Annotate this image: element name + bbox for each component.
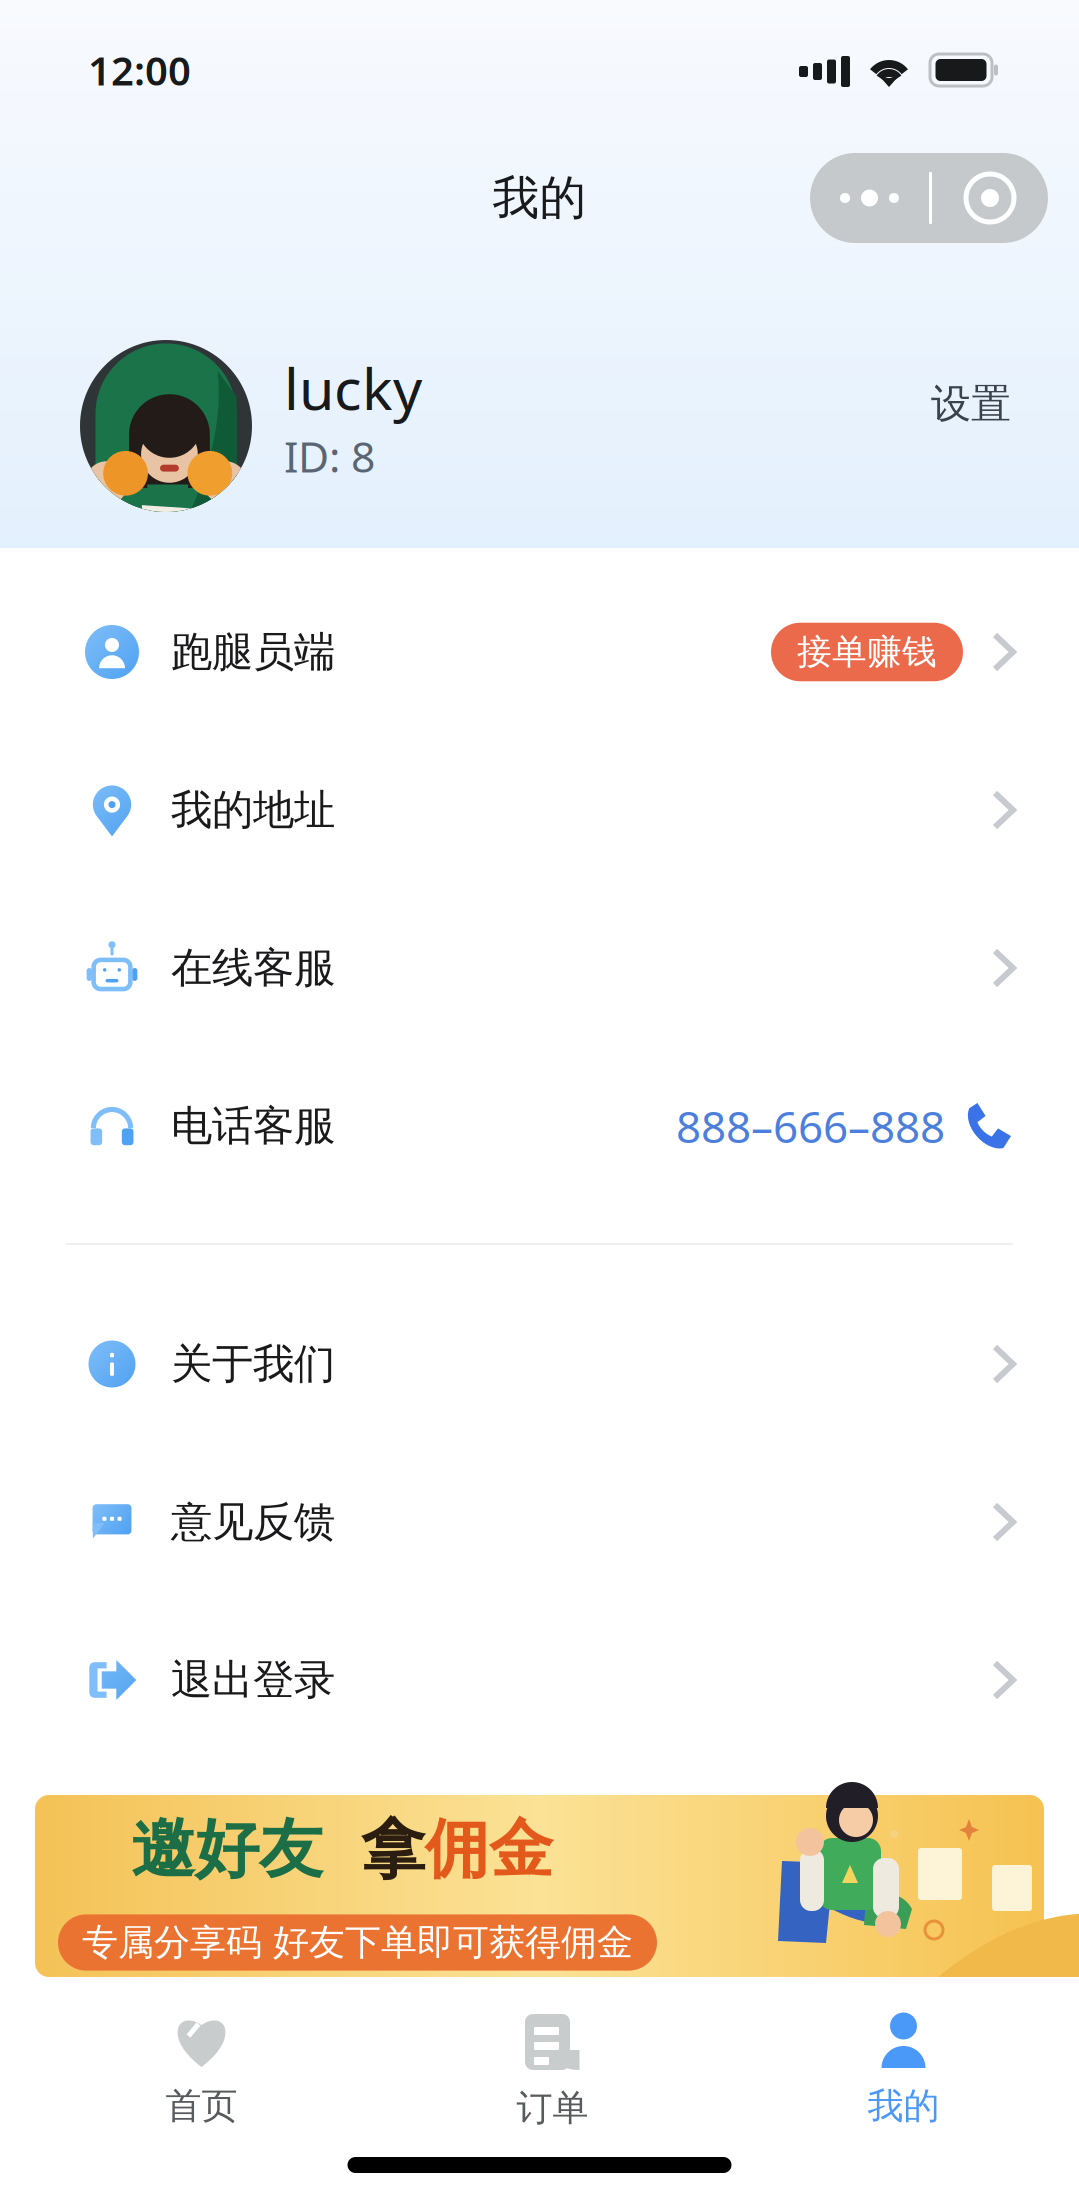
button[interactable]: 关于我们: [0, 1285, 1079, 1443]
button[interactable]: 我的: [728, 1977, 1079, 2133]
staticText: 订单: [516, 2086, 588, 2130]
button[interactable]: More: [810, 153, 929, 243]
button[interactable]: Close mini program: [932, 153, 1048, 243]
button[interactable]: 退出登录: [0, 1601, 1079, 1759]
staticText: 拿: [323, 1810, 425, 1889]
staticText: 关于我们: [171, 1339, 335, 1389]
staticText: 专属分享码 好友下单即可获得佣金: [82, 1920, 633, 1965]
staticText: 意见反馈: [171, 1497, 335, 1547]
staticText: 在线客服: [171, 943, 335, 993]
button[interactable]: 我的地址: [0, 731, 1079, 889]
staticText: 电话客服: [171, 1101, 335, 1151]
staticText: 888–666–888: [676, 1097, 945, 1155]
staticText: 邀好友: [131, 1810, 323, 1889]
staticText: 我的: [492, 169, 586, 227]
button[interactable]: 在线客服: [0, 889, 1079, 1047]
staticText: 我的地址: [171, 785, 335, 835]
button[interactable]: 电话客服: [0, 1047, 1079, 1205]
button[interactable]: 跑腿员端: [0, 573, 1079, 731]
button[interactable]: 首页: [26, 1977, 377, 2133]
staticText: 跑腿员端: [171, 627, 335, 677]
staticText: 佣金: [425, 1810, 553, 1889]
button[interactable]: 邀好友: [0, 1795, 1079, 1977]
staticText: ID: 8: [284, 428, 375, 484]
staticText: 首页: [165, 2084, 237, 2128]
staticText: 我的: [867, 2084, 939, 2128]
button[interactable]: 意见反馈: [0, 1443, 1079, 1601]
staticText: 接单赚钱: [797, 631, 937, 673]
staticText: lucky: [284, 350, 422, 426]
staticText: 12:00: [88, 43, 191, 96]
button[interactable]: 订单: [377, 1977, 728, 2133]
button[interactable]: 设置: [917, 387, 1025, 464]
staticText: 退出登录: [171, 1655, 335, 1705]
staticText: 设置: [931, 379, 1011, 428]
